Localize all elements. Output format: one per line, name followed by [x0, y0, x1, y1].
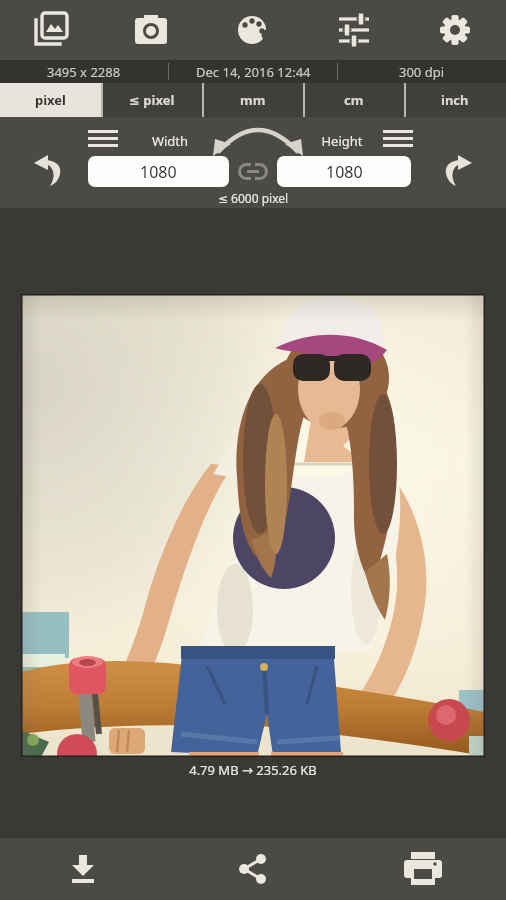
button[interactable]: 300 dpi: [338, 60, 506, 83]
staticText: mm: [240, 91, 266, 109]
button[interactable]: 1080: [277, 156, 411, 187]
button[interactable]: [223, 0, 283, 60]
button[interactable]: [425, 0, 485, 60]
staticText: 3495 x 2288: [47, 63, 121, 81]
staticText: 1080: [326, 161, 363, 183]
staticText: pixel: [35, 91, 66, 109]
button[interactable]: ≤ pixel: [101, 83, 202, 117]
button[interactable]: cm: [303, 83, 404, 117]
button[interactable]: 3495 x 2288: [0, 60, 168, 83]
button[interactable]: [121, 0, 181, 60]
button[interactable]: [213, 844, 293, 894]
staticText: Dec 14, 2016 12:44: [196, 63, 311, 81]
button[interactable]: 1080: [88, 156, 229, 187]
staticText: Height: [312, 132, 372, 150]
button[interactable]: Dec 14, 2016 12:44: [169, 60, 337, 83]
staticText: 1080: [140, 161, 177, 183]
button[interactable]: pixel: [0, 83, 101, 117]
button[interactable]: [20, 0, 80, 60]
staticText: ≤ 6000 pixel: [193, 190, 313, 206]
button[interactable]: [21, 294, 485, 757]
staticText: 300 dpi: [399, 63, 445, 81]
button[interactable]: [88, 129, 118, 149]
button[interactable]: [30, 150, 66, 186]
button[interactable]: [324, 0, 384, 60]
button[interactable]: [238, 163, 268, 180]
staticText: Width: [140, 132, 200, 150]
staticText: ≤ pixel: [129, 91, 175, 109]
button[interactable]: [383, 129, 413, 149]
staticText: inch: [441, 91, 469, 109]
staticText: cm: [344, 91, 364, 109]
button[interactable]: inch: [404, 83, 506, 117]
button[interactable]: mm: [202, 83, 303, 117]
button[interactable]: [383, 844, 463, 894]
button[interactable]: [440, 150, 476, 186]
staticText: 4.79 MB → 235.26 KB: [153, 761, 353, 779]
button[interactable]: [43, 844, 123, 894]
